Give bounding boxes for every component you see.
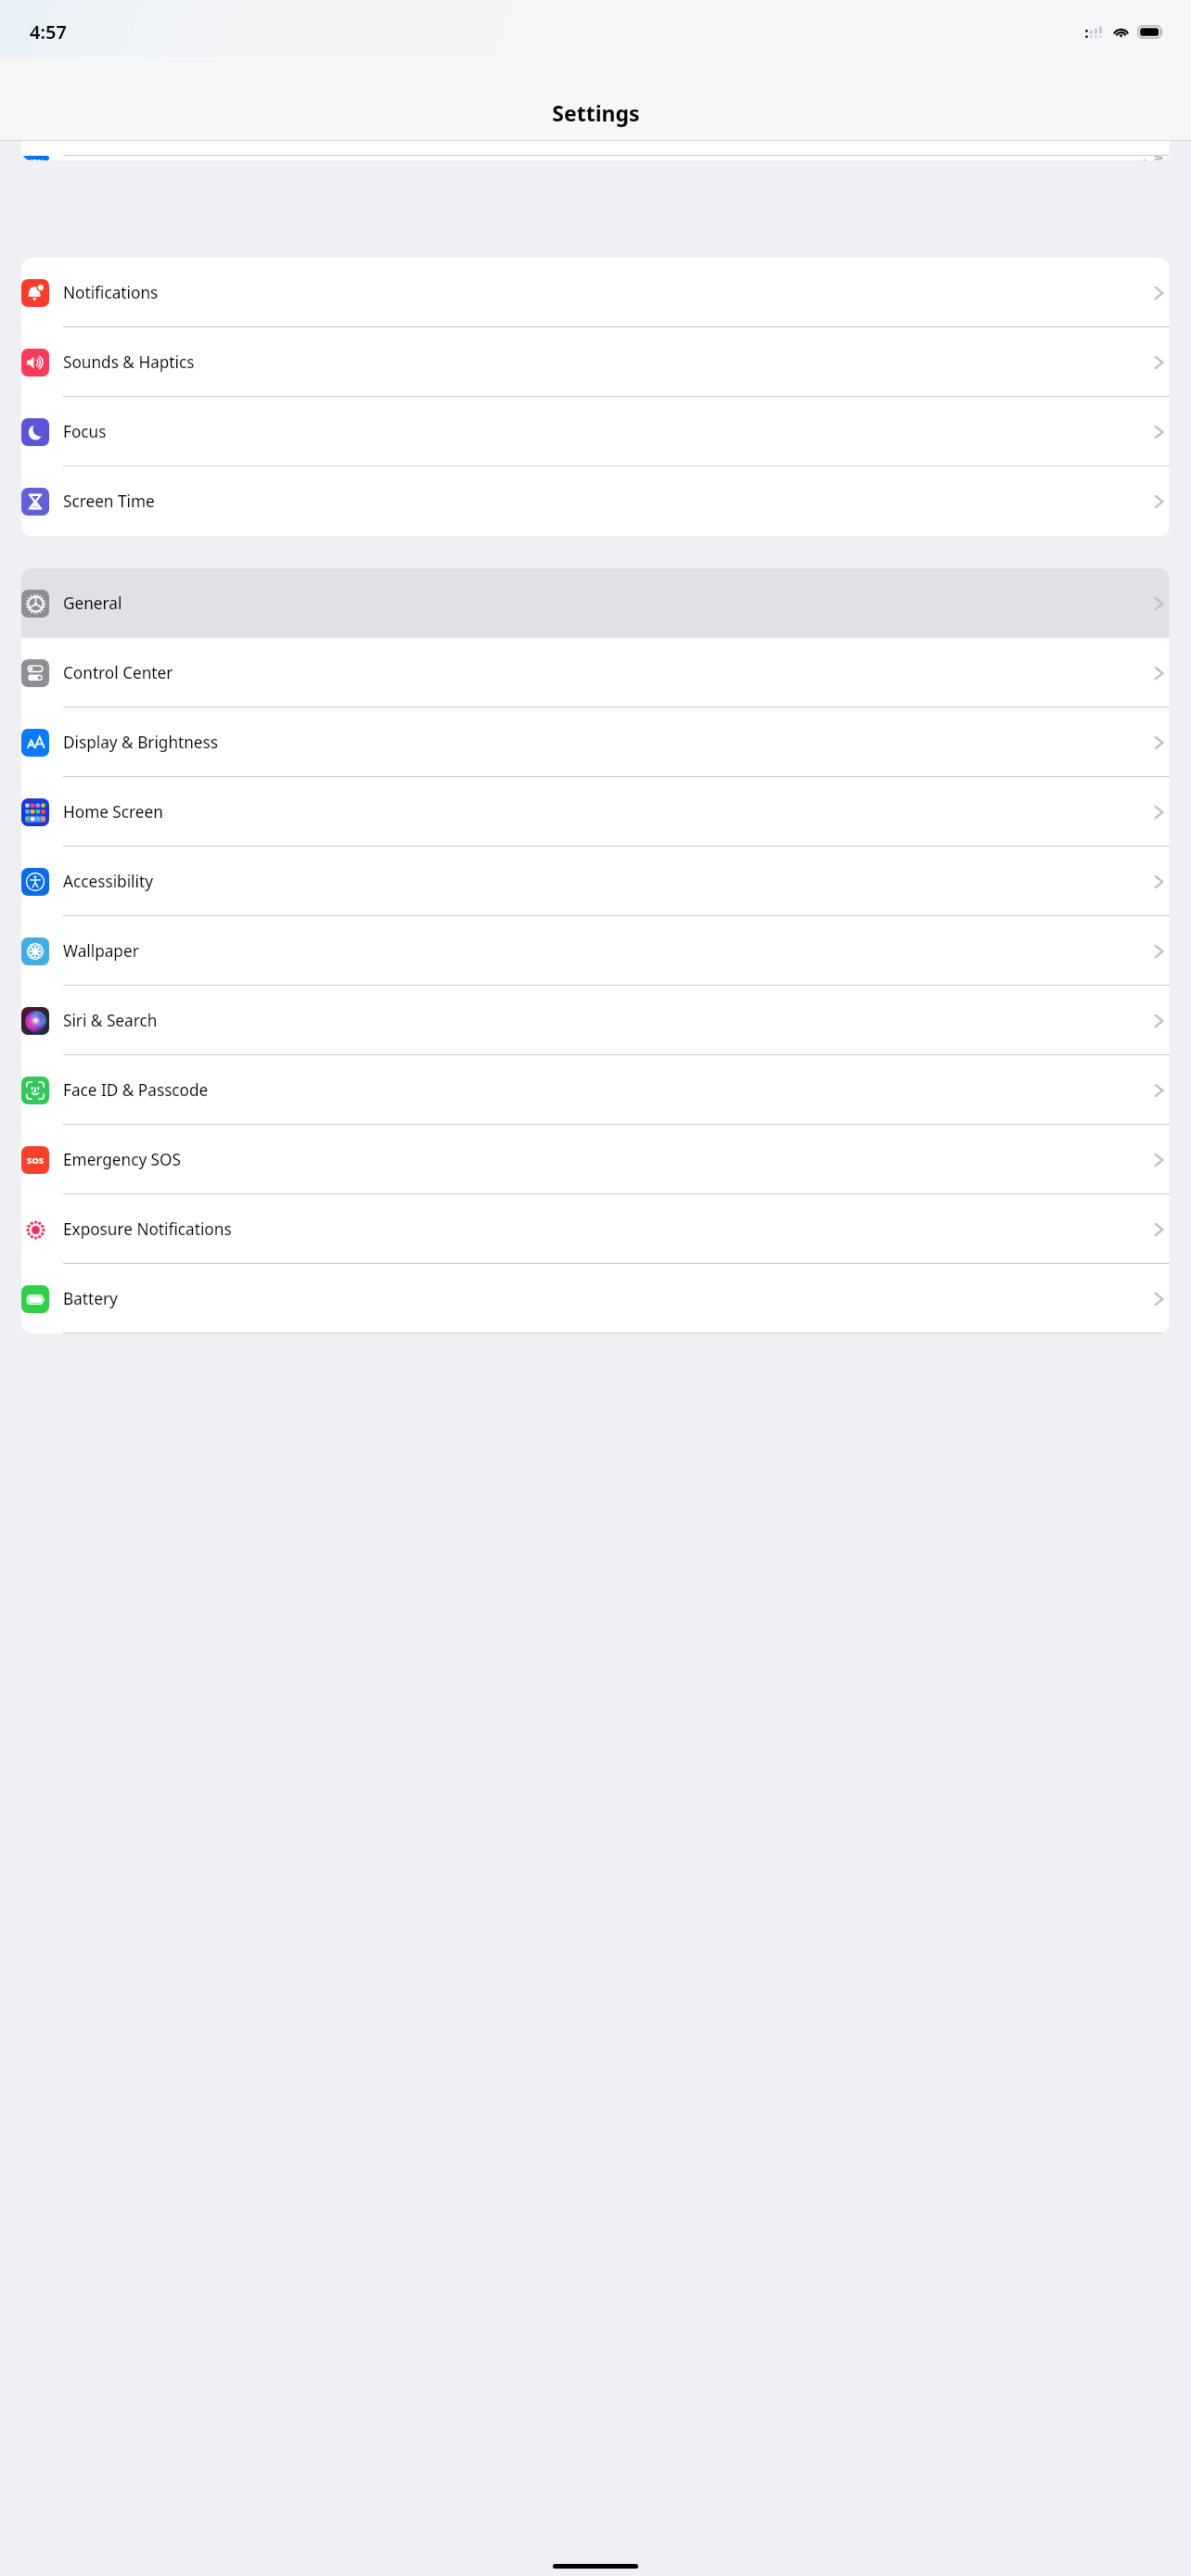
staticText: Face ID & Passcode <box>63 1079 209 1101</box>
button[interactable]: SOS <box>21 1125 1170 1194</box>
staticText: Focus <box>63 421 107 442</box>
button[interactable]: Sounds & Haptics <box>21 327 1170 397</box>
staticText: Sounds & Haptics <box>63 351 195 373</box>
staticText: Emergency SOS <box>63 1149 181 1170</box>
staticText: SOS <box>27 1154 45 1167</box>
button[interactable]: Personal Hotspot <box>21 141 1170 156</box>
staticText: Home Screen <box>63 801 163 823</box>
staticText: 4:57 <box>30 19 67 45</box>
button[interactable]: Accessibility <box>21 847 1170 916</box>
button[interactable]: VPN <box>21 156 1170 160</box>
staticText: General <box>63 593 122 614</box>
staticText: Exposure Notifications <box>63 1218 232 1240</box>
button[interactable]: Notifications <box>21 258 1170 327</box>
button[interactable]: Wallpaper <box>21 916 1170 986</box>
staticText: Accessibility <box>63 871 153 892</box>
button[interactable]: Battery <box>21 1264 1170 1333</box>
staticText: Display & Brightness <box>63 732 219 753</box>
button[interactable]: General <box>21 568 1170 638</box>
staticText: Control Center <box>63 662 173 683</box>
staticText: Battery <box>63 1288 118 1309</box>
button[interactable]: Siri & Search <box>21 986 1170 1055</box>
staticText: Siri & Search <box>63 1010 158 1031</box>
button[interactable]: Exposure Notifications <box>21 1194 1170 1264</box>
staticText: Settings <box>552 98 640 127</box>
button[interactable]: Home Screen <box>21 777 1170 847</box>
button[interactable]: Control Center <box>21 638 1170 708</box>
button[interactable]: Focus <box>21 397 1170 466</box>
staticText: Wallpaper <box>63 940 139 962</box>
staticText: Notifications <box>63 282 159 303</box>
staticText: Screen Time <box>63 491 155 512</box>
button[interactable]: Screen Time <box>21 466 1170 536</box>
button[interactable]: Face ID & Passcode <box>21 1055 1170 1125</box>
button[interactable]: Display & Brightness <box>21 708 1170 777</box>
